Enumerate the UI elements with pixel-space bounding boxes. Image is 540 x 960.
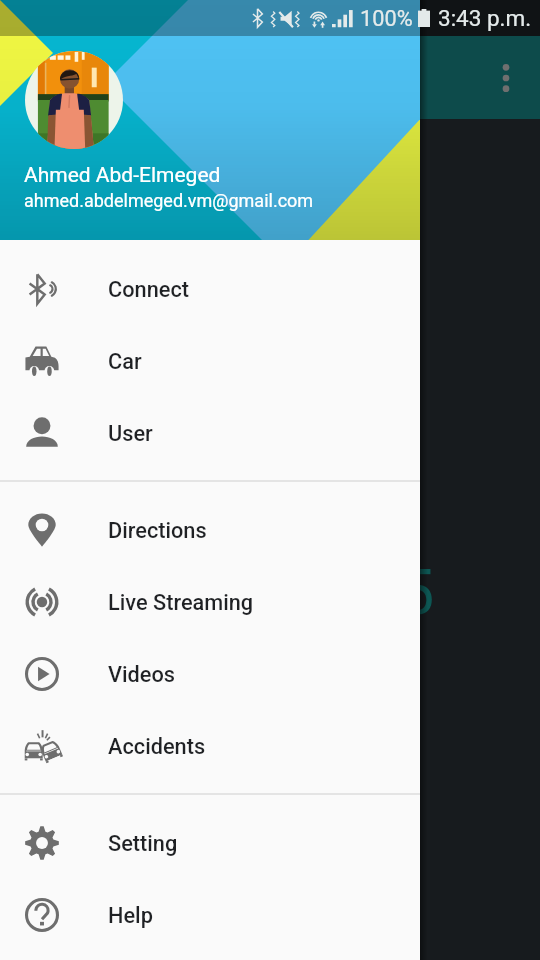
button[interactable]: Setting xyxy=(0,807,420,879)
button[interactable]: Help xyxy=(0,879,420,951)
staticText: Videos xyxy=(108,662,176,687)
staticText: Setting xyxy=(108,831,178,856)
staticText: ahmed.abdelmeged.vm@gmail.com xyxy=(24,190,314,211)
staticText: Live Streaming xyxy=(108,590,254,615)
staticText: Directions xyxy=(108,518,207,543)
staticText: Accidents xyxy=(108,734,206,759)
staticText: 100% xyxy=(360,6,413,31)
staticText: Help xyxy=(108,903,153,928)
button[interactable]: More options xyxy=(482,54,530,102)
button[interactable]: Car xyxy=(0,325,420,397)
staticText: 5 xyxy=(399,556,435,630)
button[interactable]: Videos xyxy=(0,638,420,710)
button[interactable]: User xyxy=(0,397,420,469)
button[interactable]: Directions xyxy=(0,494,420,566)
button[interactable]: Connect xyxy=(0,253,420,325)
staticText: Car xyxy=(108,349,142,374)
button[interactable]: Live Streaming xyxy=(0,566,420,638)
staticText: Connect xyxy=(108,277,189,302)
staticText: Ahmed Abd-Elmeged xyxy=(24,163,221,188)
button[interactable]: Accidents xyxy=(0,710,420,782)
staticText: User xyxy=(108,421,153,446)
staticText: 3:43 p.m. xyxy=(438,5,532,31)
